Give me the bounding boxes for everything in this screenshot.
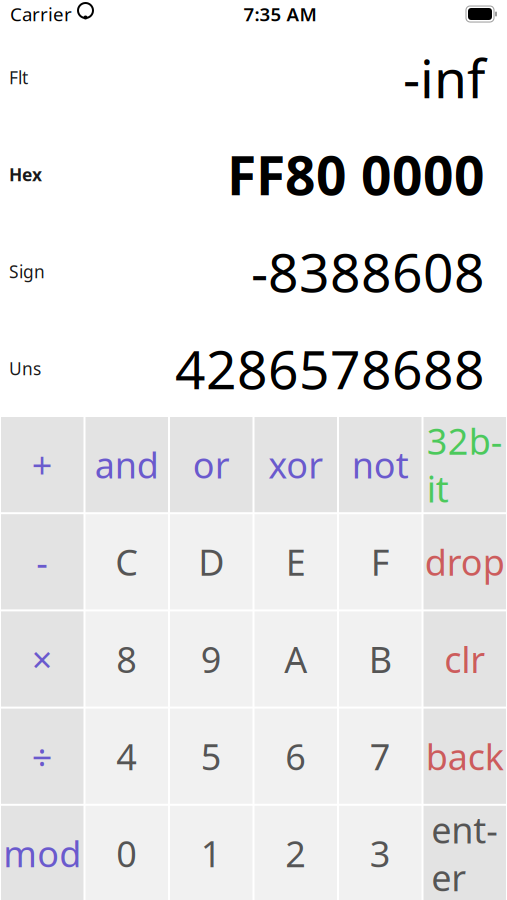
button[interactable]: A — [254, 611, 337, 707]
staticText: -inf — [403, 42, 485, 113]
staticText: × — [32, 635, 53, 683]
staticText: xor — [268, 441, 323, 488]
button[interactable]: ÷ — [1, 709, 83, 804]
button[interactable]: × — [1, 611, 83, 707]
staticText: Hex — [9, 163, 42, 186]
staticText: 4286578688 — [175, 333, 485, 404]
button[interactable]: 2 — [254, 806, 337, 900]
staticText: enter — [431, 806, 498, 900]
staticText: ÷ — [32, 732, 53, 780]
staticText: FF80 0000 — [227, 139, 485, 210]
button[interactable]: 9 — [170, 611, 252, 707]
staticText: Flt — [9, 66, 28, 89]
button[interactable]: C — [85, 514, 168, 609]
staticText: back — [426, 732, 504, 780]
button[interactable]: mod — [1, 806, 83, 900]
button[interactable]: 6 — [254, 709, 337, 804]
button[interactable]: 5 — [170, 709, 252, 804]
button[interactable]: clr — [423, 611, 506, 707]
staticText: 9 — [201, 635, 222, 683]
button[interactable]: 8 — [85, 611, 168, 707]
button[interactable]: B — [339, 611, 421, 707]
button[interactable]: 7 — [339, 709, 421, 804]
staticText: drop — [425, 538, 505, 586]
button[interactable]: F — [339, 514, 421, 609]
staticText: clr — [444, 635, 485, 683]
staticText: 1 — [201, 829, 222, 877]
button[interactable]: 1 — [170, 806, 252, 900]
staticText: - — [36, 538, 48, 586]
staticText: 5 — [201, 732, 222, 780]
staticText: Carrier — [10, 2, 72, 26]
staticText: 3 — [370, 829, 391, 877]
staticText: or — [193, 441, 230, 488]
button[interactable]: + — [1, 417, 83, 512]
button[interactable]: drop — [423, 514, 506, 609]
button[interactable]: 4 — [85, 709, 168, 804]
button[interactable]: D — [170, 514, 252, 609]
button[interactable]: E — [254, 514, 337, 609]
button[interactable]: xor — [254, 417, 337, 512]
staticText: 4 — [116, 732, 137, 780]
button[interactable]: 0 — [85, 806, 168, 900]
staticText: 8 — [116, 635, 137, 683]
button[interactable]: back — [423, 709, 506, 804]
staticText: Sign — [9, 260, 45, 283]
button[interactable]: enter — [423, 806, 506, 900]
button[interactable]: not — [339, 417, 421, 512]
staticText: -8388608 — [251, 236, 485, 307]
staticText: A — [284, 635, 307, 683]
staticText: 6 — [285, 732, 306, 780]
staticText: 0 — [116, 829, 137, 877]
button[interactable]: and — [85, 417, 168, 512]
staticText: mod — [3, 829, 81, 877]
staticText: B — [369, 635, 392, 683]
button[interactable]: - — [1, 514, 83, 609]
staticText: not — [352, 441, 409, 488]
staticText: + — [32, 441, 53, 488]
staticText: 2 — [285, 829, 306, 877]
staticText: E — [286, 538, 306, 586]
button[interactable]: 3 — [339, 806, 421, 900]
staticText: and — [95, 441, 159, 488]
staticText: Uns — [9, 357, 41, 380]
staticText: F — [371, 538, 390, 586]
staticText: C — [115, 538, 138, 586]
staticText: 7:35 AM — [243, 2, 316, 26]
button[interactable]: or — [170, 417, 252, 512]
staticText: D — [198, 538, 224, 586]
staticText: 7 — [370, 732, 391, 780]
button[interactable]: 32bit — [423, 417, 506, 512]
staticText: 32bit — [427, 417, 503, 512]
